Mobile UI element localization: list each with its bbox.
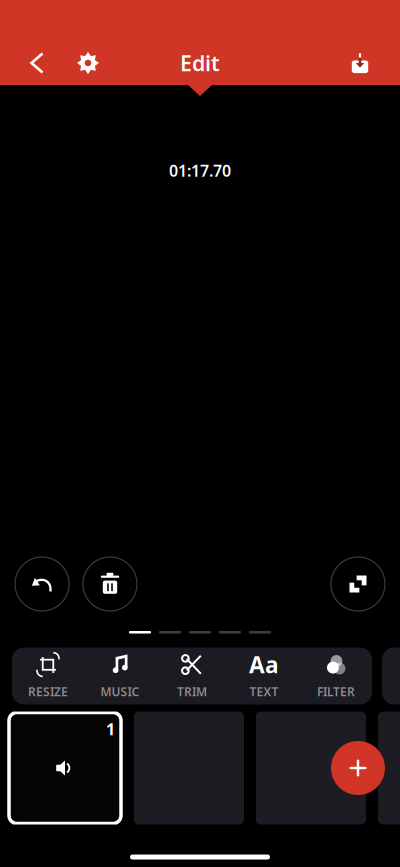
button[interactable]: Clip 3 [256, 711, 366, 824]
staticText: FILTER [317, 683, 355, 699]
button[interactable]: Back [22, 41, 52, 85]
button[interactable]: Expand [331, 557, 385, 611]
button[interactable]: FILTER [300, 647, 372, 704]
button[interactable]: RESIZE [12, 647, 84, 704]
button[interactable]: Aa [228, 647, 300, 704]
button[interactable]: Settings [66, 41, 110, 85]
button[interactable]: MUSIC [84, 647, 156, 704]
button[interactable]: Undo [15, 557, 69, 611]
button[interactable]: 1 [8, 711, 122, 824]
staticText: MUSIC [100, 683, 139, 699]
staticText: 1 [106, 718, 115, 740]
button[interactable]: TRIM [156, 647, 228, 704]
staticText: RESIZE [28, 683, 68, 699]
staticText: TEXT [249, 683, 278, 699]
button[interactable]: Add clip [331, 741, 385, 795]
button[interactable]: Save [342, 41, 378, 85]
staticText: Edit [180, 49, 220, 77]
staticText: 01:17.70 [169, 160, 231, 181]
staticText: TRIM [177, 683, 207, 699]
staticText: Aa [249, 649, 279, 680]
button[interactable]: Delete [83, 557, 137, 611]
